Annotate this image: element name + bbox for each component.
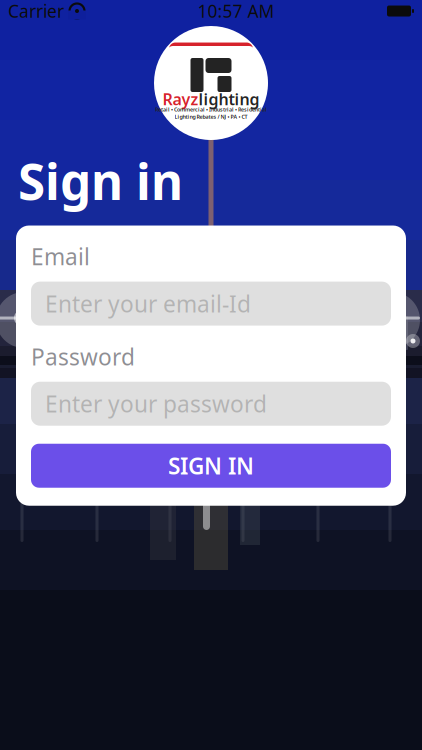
button[interactable]: Enter your email-Id <box>31 282 391 326</box>
staticText: Carrier <box>8 0 64 22</box>
staticText: Lighting Rebates / NJ • PA • CT <box>174 113 247 120</box>
staticText: lighting <box>198 88 259 110</box>
staticText: 10:57 AM <box>197 0 274 22</box>
staticText: Rayz <box>162 88 198 110</box>
staticText: Sign in <box>18 148 183 213</box>
staticText: Enter your email-Id <box>45 289 251 319</box>
staticText: Password <box>31 342 135 372</box>
button[interactable]: Enter your password <box>31 382 391 426</box>
staticText: SIGN IN <box>168 451 254 481</box>
staticText: Retail • Commercial • Industrial • Resid… <box>155 106 267 113</box>
button[interactable]: SIGN IN <box>31 444 391 488</box>
staticText: Enter your password <box>45 389 267 419</box>
staticText: Email <box>31 241 90 272</box>
